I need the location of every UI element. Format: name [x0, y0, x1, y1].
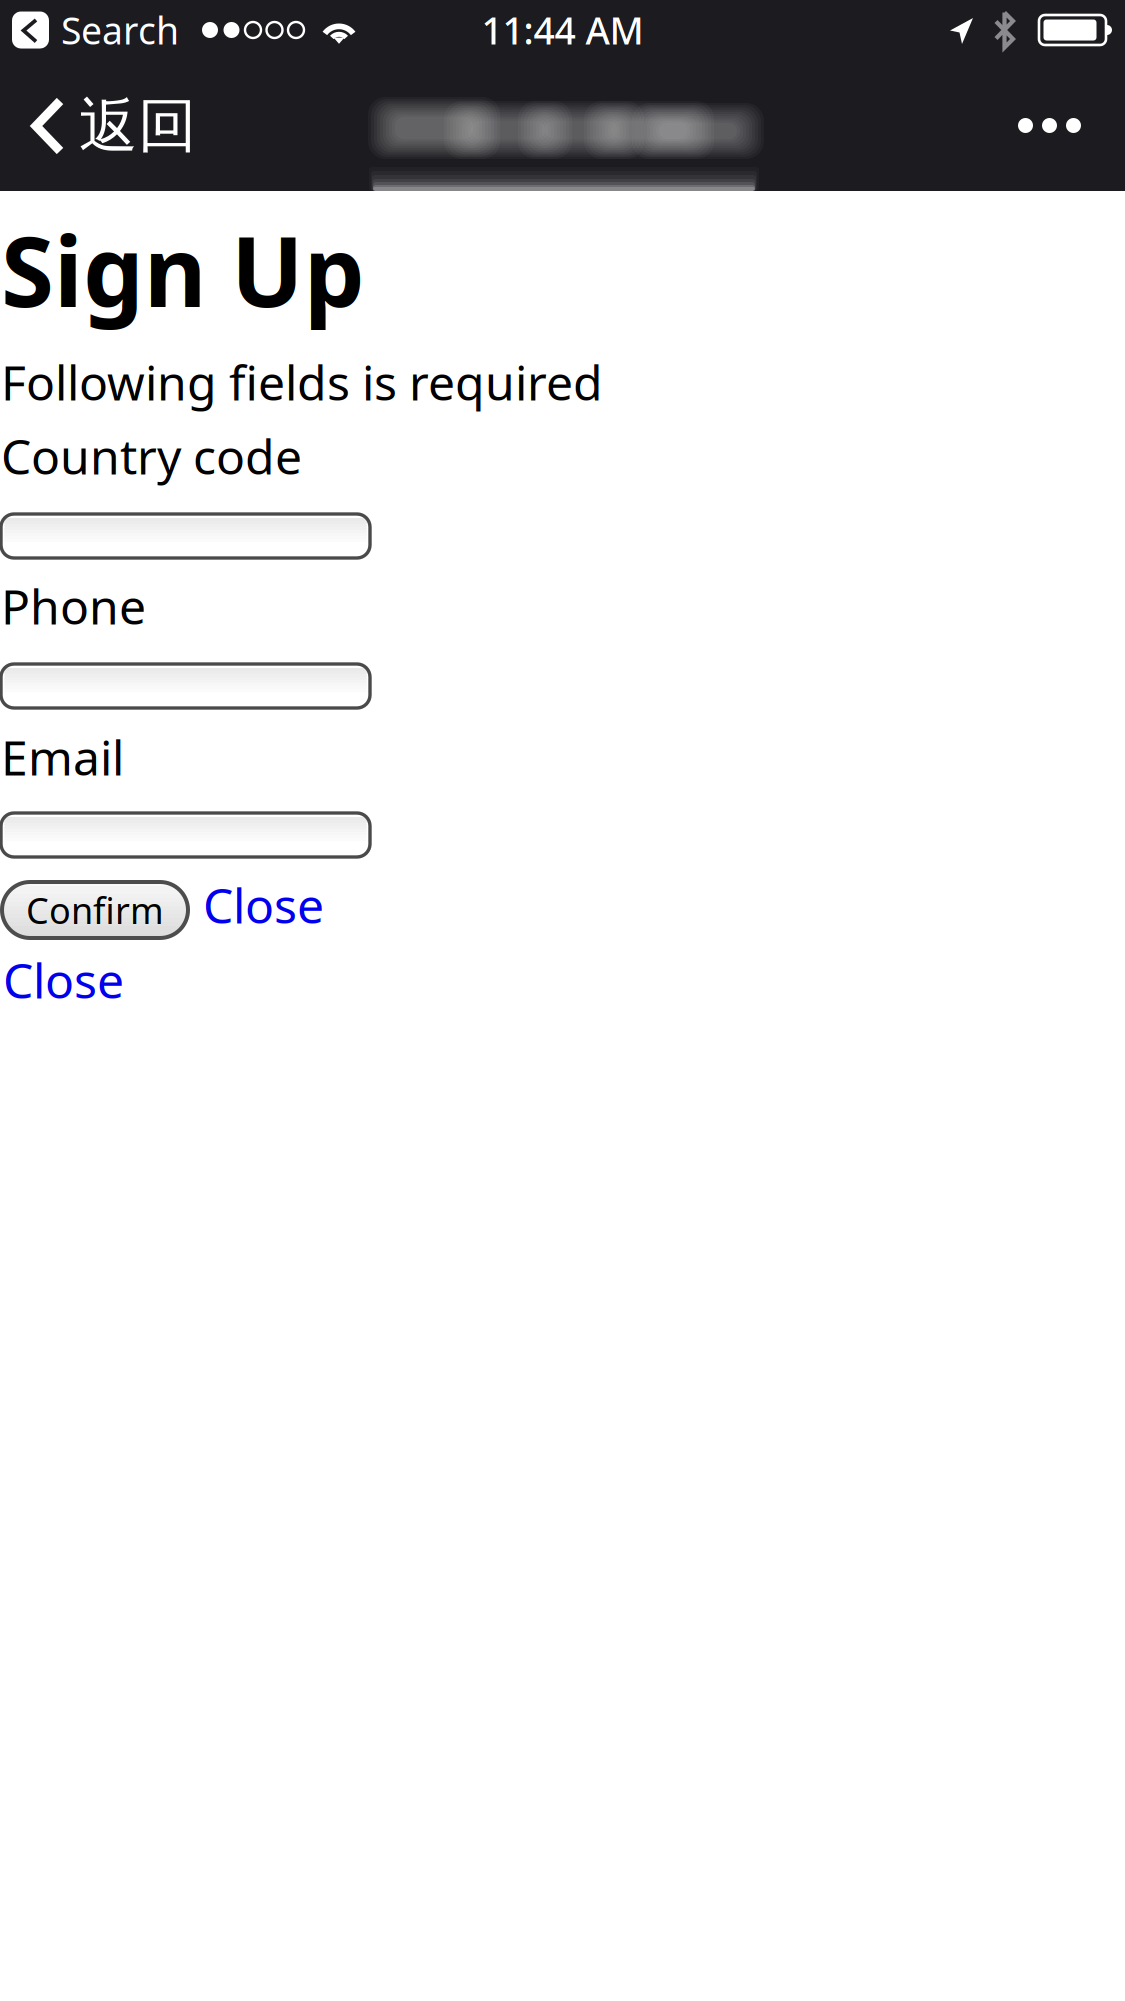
button[interactable]: More — [996, 70, 1103, 181]
staticText: Search — [61, 5, 179, 55]
staticText: Confirm — [26, 886, 164, 934]
staticText: Following fields is required — [1, 350, 603, 414]
staticText: Close — [203, 873, 324, 937]
staticText: Sign Up — [1, 206, 365, 333]
button[interactable]: Close — [1, 948, 126, 1012]
staticText: 返回 — [79, 90, 197, 162]
staticText: Phone — [1, 574, 146, 638]
staticText: Email — [1, 725, 124, 789]
staticText: 11:44 AM — [481, 5, 643, 55]
button[interactable]: Back to Search — [0, 0, 191, 60]
button[interactable]: Close — [201, 873, 326, 937]
button[interactable]: Confirm — [2, 882, 188, 938]
staticText: Close — [3, 948, 124, 1012]
staticText: Country code — [1, 424, 302, 488]
button[interactable]: 返回 — [5, 71, 223, 181]
